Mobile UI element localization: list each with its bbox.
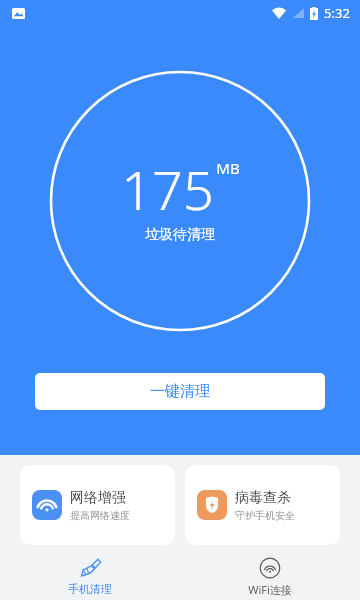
staticText: 175 bbox=[121, 152, 214, 226]
staticText: 5:32 bbox=[324, 4, 350, 22]
button[interactable]: 网络增强 bbox=[20, 465, 175, 545]
staticText: 病毒查杀 bbox=[235, 489, 291, 507]
staticText: MB bbox=[216, 158, 240, 178]
button[interactable]: 一键清理 bbox=[35, 373, 325, 410]
staticText: 手机清理 bbox=[68, 582, 112, 596]
button[interactable]: 病毒查杀 bbox=[185, 465, 340, 545]
staticText: 垃圾待清理 bbox=[145, 226, 215, 244]
staticText: 守护手机安全 bbox=[235, 509, 295, 522]
button[interactable]: WiFi连接 bbox=[180, 553, 360, 600]
staticText: 一键清理 bbox=[150, 382, 210, 401]
staticText: 提高网络速度 bbox=[70, 509, 130, 522]
staticText: WiFi连接 bbox=[248, 582, 292, 597]
button[interactable]: 手机清理 bbox=[0, 553, 180, 600]
staticText: 网络增强 bbox=[70, 489, 126, 507]
